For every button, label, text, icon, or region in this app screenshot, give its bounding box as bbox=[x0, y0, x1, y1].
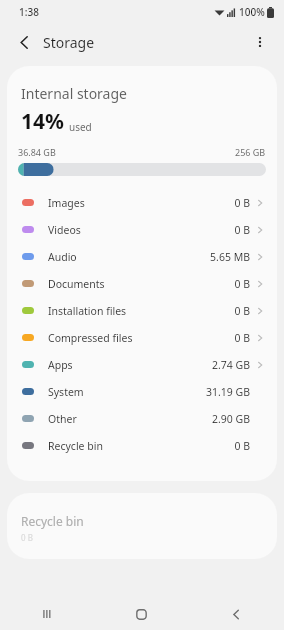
staticText: Documents bbox=[48, 277, 105, 291]
staticText: 2.74 GB bbox=[211, 358, 250, 372]
staticText: Audio bbox=[48, 250, 77, 264]
staticText: Internal storage bbox=[21, 84, 127, 103]
staticText: 5.65 MB bbox=[210, 250, 250, 264]
staticText: Storage bbox=[43, 33, 95, 52]
staticText: 0 B bbox=[234, 223, 250, 237]
staticText: Videos bbox=[48, 223, 81, 237]
staticText: Other bbox=[48, 412, 77, 426]
button[interactable]: Recycle bin bbox=[7, 432, 277, 459]
staticText: 31.19 GB bbox=[205, 385, 250, 399]
button[interactable]: Images bbox=[7, 189, 277, 216]
button[interactable]: Back bbox=[189, 598, 284, 630]
button[interactable]: Back bbox=[8, 26, 40, 58]
staticText: 0 B bbox=[234, 331, 250, 345]
staticText: 14% bbox=[21, 107, 64, 136]
staticText: 256 GB bbox=[235, 146, 266, 158]
staticText: 1:38 bbox=[19, 5, 39, 19]
button[interactable]: Documents bbox=[7, 270, 277, 297]
staticText: 36.84 GB bbox=[18, 146, 56, 158]
staticText: System bbox=[48, 385, 84, 399]
button[interactable]: Recycle bin bbox=[7, 493, 277, 559]
staticText: Apps bbox=[48, 358, 73, 372]
button[interactable]: Apps bbox=[7, 351, 277, 378]
button[interactable]: Home bbox=[94, 598, 189, 630]
staticText: Images bbox=[48, 196, 85, 210]
staticText: Recycle bin bbox=[21, 513, 84, 529]
button[interactable]: Compressed files bbox=[7, 324, 277, 351]
staticText: 0 B bbox=[234, 439, 250, 453]
staticText: 2.90 GB bbox=[211, 412, 250, 426]
staticText: 0 B bbox=[234, 196, 250, 210]
button[interactable]: Other bbox=[7, 405, 277, 432]
staticText: 100% bbox=[239, 5, 265, 19]
staticText: 0 B bbox=[21, 532, 33, 543]
staticText: Recycle bin bbox=[48, 439, 103, 453]
button[interactable]: Audio bbox=[7, 243, 277, 270]
staticText: Compressed files bbox=[48, 331, 133, 345]
button[interactable]: More options bbox=[244, 26, 276, 58]
staticText: 0 B bbox=[234, 277, 250, 291]
button[interactable]: Recents bbox=[0, 598, 94, 630]
button[interactable]: System bbox=[7, 378, 277, 405]
button[interactable]: Installation files bbox=[7, 297, 277, 324]
staticText: Installation files bbox=[48, 304, 127, 318]
button[interactable]: Videos bbox=[7, 216, 277, 243]
staticText: used bbox=[69, 120, 92, 134]
staticText: 0 B bbox=[234, 304, 250, 318]
